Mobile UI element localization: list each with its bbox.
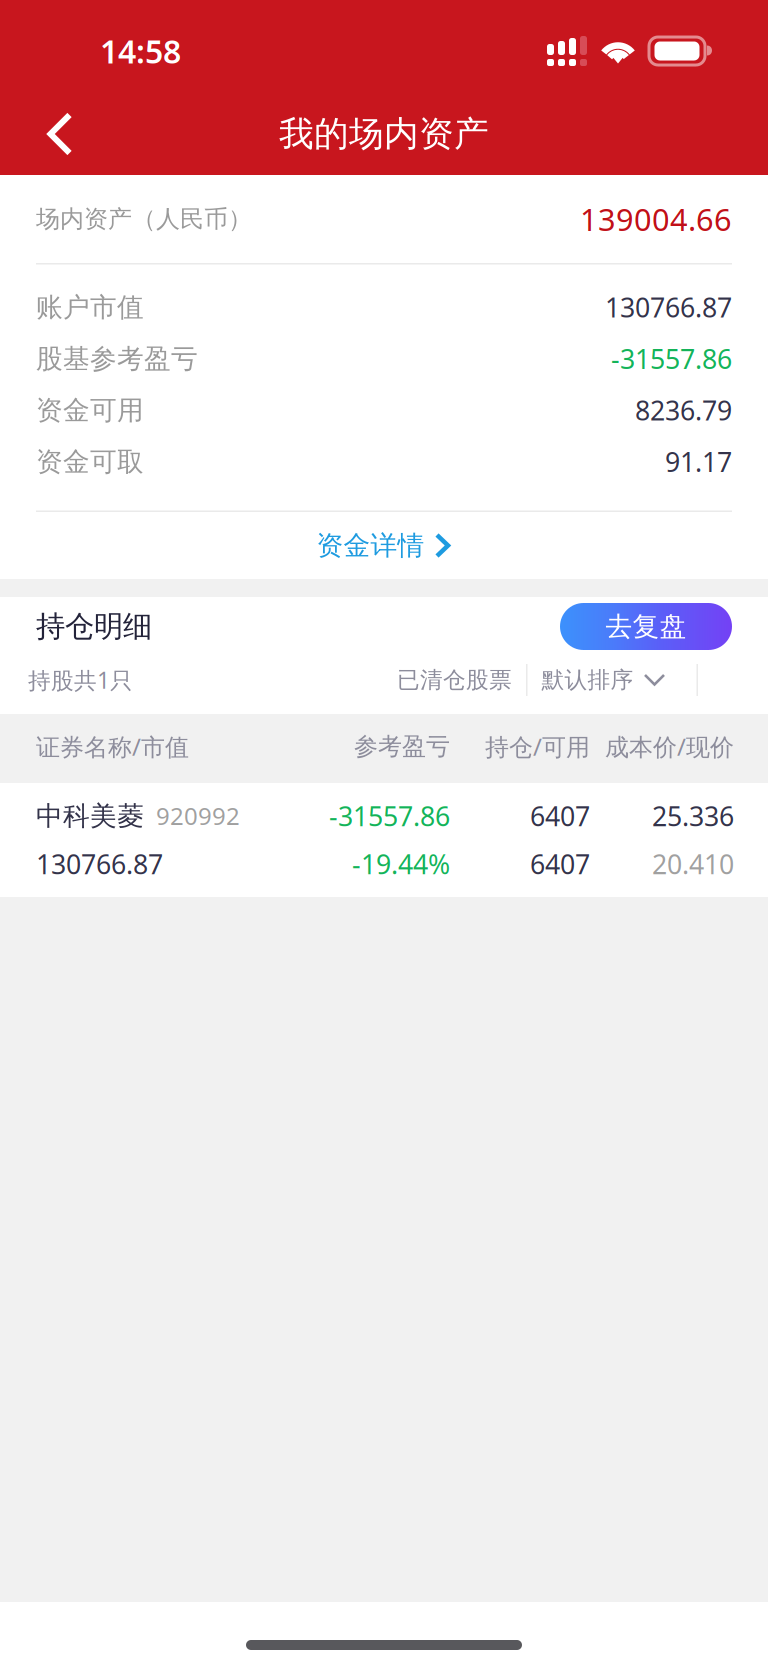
staticText: -31557.86	[611, 341, 732, 376]
staticText: 14:58	[100, 30, 181, 72]
staticText: 20.410	[652, 846, 734, 882]
staticText: 参考盈亏	[354, 732, 450, 761]
staticText: 已清仓股票	[397, 666, 512, 694]
staticText: 25.336	[652, 798, 734, 834]
staticText: 账户市值	[36, 291, 144, 324]
staticText: 6407	[530, 846, 590, 882]
staticText: 资金详情	[316, 529, 424, 562]
staticText: 资金可取	[36, 445, 144, 478]
staticText: 证券名称/市值	[36, 731, 189, 762]
staticText: 中科美菱	[36, 800, 144, 832]
button[interactable]: 默认排序	[541, 658, 665, 702]
staticText: 6407	[530, 798, 590, 834]
staticText: 920992	[156, 800, 240, 831]
staticText: 持股共1只	[28, 665, 133, 695]
staticText: 持仓明细	[36, 608, 152, 644]
staticText: 资金可用	[36, 394, 144, 427]
staticText: 去复盘	[605, 610, 686, 643]
staticText: -19.44%	[352, 846, 450, 882]
staticText: -31557.86	[329, 798, 450, 834]
staticText: 成本价/现价	[605, 731, 734, 762]
staticText: 默认排序	[541, 666, 633, 694]
staticText: 我的场内资产	[279, 113, 489, 155]
button[interactable]: 已清仓股票	[397, 658, 512, 702]
staticText: 130766.87	[36, 846, 163, 882]
staticText: 91.17	[665, 444, 732, 479]
button[interactable]: Back	[20, 94, 100, 174]
staticText: 130766.87	[605, 289, 732, 325]
staticText: 持仓/可用	[485, 731, 590, 762]
button[interactable]: 中科美菱	[0, 783, 768, 897]
staticText: 股基参考盈亏	[36, 342, 198, 375]
staticText: 8236.79	[635, 392, 732, 428]
button[interactable]: 资金详情	[36, 512, 732, 579]
staticText: 139004.66	[580, 199, 732, 239]
button[interactable]: 去复盘	[560, 603, 732, 650]
staticText: 场内资产（人民币）	[36, 204, 252, 234]
